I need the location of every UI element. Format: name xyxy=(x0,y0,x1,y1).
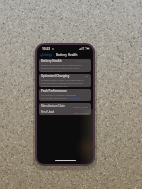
staticText: 10:23 xyxy=(42,47,51,51)
staticText: Manufacture Date xyxy=(41,104,65,108)
other: Back xyxy=(40,54,42,57)
staticText: Battery Health xyxy=(56,53,78,57)
button[interactable]: Battery Health xyxy=(41,59,89,63)
staticText: normal peak performance. xyxy=(41,97,68,100)
staticText: Aug 27, 2023 xyxy=(73,105,89,108)
staticText: Peak Performance xyxy=(41,89,67,93)
button[interactable]: Manufacture Date xyxy=(41,103,89,109)
staticText: Optimized Charging xyxy=(41,74,70,78)
button[interactable]: Back xyxy=(40,53,52,57)
staticText: Oct 14, 2023 xyxy=(74,111,89,114)
button[interactable]: First Used xyxy=(41,109,89,115)
staticText: On xyxy=(85,75,89,78)
button[interactable]: Optimized Charging xyxy=(41,74,89,78)
staticText: Battery health reporting is based on you… xyxy=(41,64,82,67)
staticText: First Used xyxy=(41,110,55,114)
staticText: Learn more xyxy=(68,97,80,100)
staticText: Your battery is currently supporting xyxy=(41,94,77,97)
staticText: Show Battery Details xyxy=(41,70,63,72)
staticText: usage patterns and charge cycle count. xyxy=(41,67,80,70)
staticText: Settings xyxy=(42,53,52,57)
button[interactable]: Peak Performance xyxy=(41,89,89,93)
staticText: To reduce battery aging, your phone lear… xyxy=(41,79,84,82)
staticText: from your daily charging routine and wai… xyxy=(41,82,83,85)
staticText: to finish charging past 80%. xyxy=(41,85,69,87)
staticText: Battery Health xyxy=(41,59,62,63)
staticText: Learn more xyxy=(76,60,89,63)
